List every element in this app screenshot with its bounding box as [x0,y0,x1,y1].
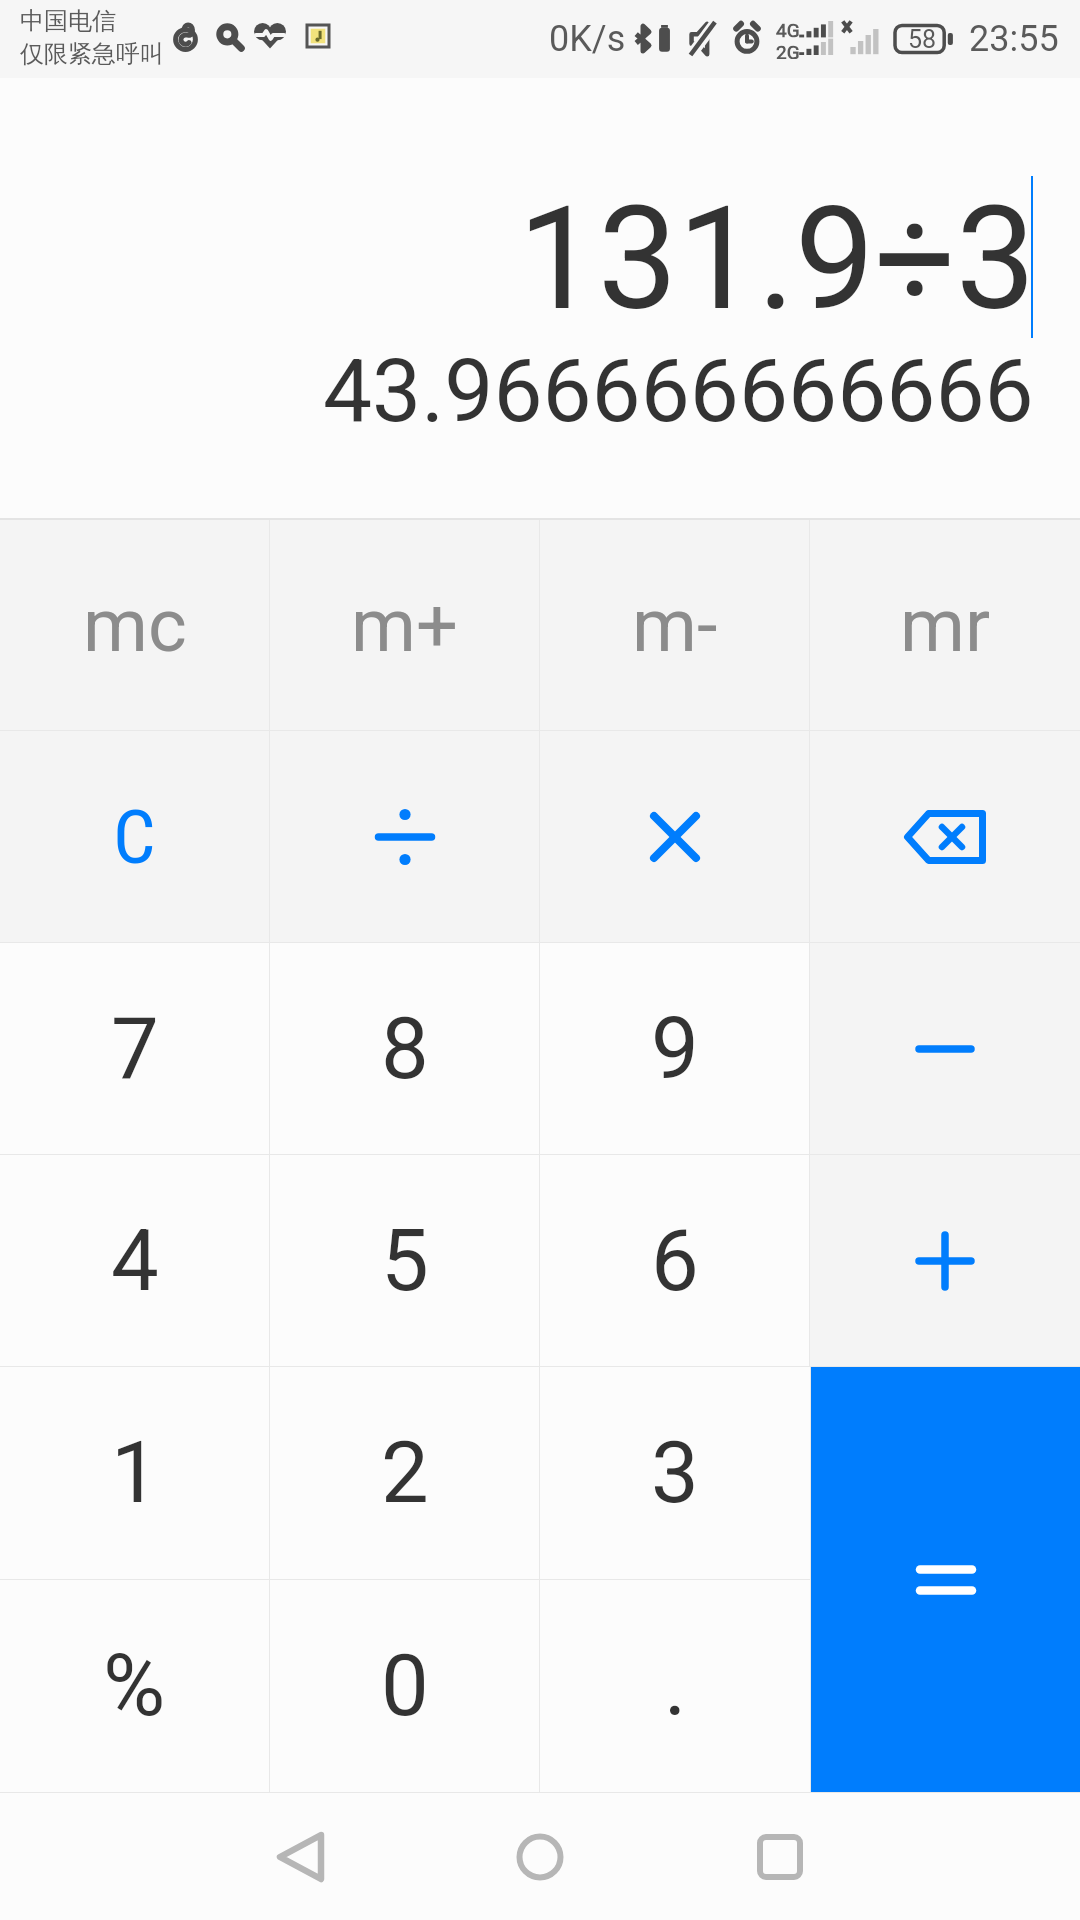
staticText: 9 [651,999,699,1099]
button[interactable]: Minus [810,943,1080,1154]
button[interactable]: m- [540,520,809,730]
staticText: 7 [111,999,159,1099]
button[interactable]: % [0,1580,269,1792]
staticText: 3 [651,1423,699,1523]
staticText: 8 [381,999,429,1099]
button[interactable]: Plus [810,1155,1080,1366]
staticText: mr [900,582,990,669]
staticText: C [113,793,156,881]
staticText: m- [632,582,718,669]
button[interactable]: m+ [270,520,539,730]
button[interactable]: 6 [540,1155,809,1366]
button[interactable]: mc [0,520,269,730]
button[interactable]: 5 [270,1155,539,1366]
button[interactable]: Backspace [810,731,1080,942]
button[interactable]: . [540,1580,810,1792]
staticText: 2G [776,41,800,59]
staticText: m+ [351,582,458,669]
button[interactable]: Divide [270,731,539,942]
button[interactable]: 7 [0,943,269,1154]
staticText: 23:55 [969,18,1059,60]
button[interactable]: 0 [270,1580,539,1792]
staticText: mc [83,582,187,669]
staticText: . [664,1636,687,1736]
staticText: 1 [111,1423,159,1523]
staticText: 0 [381,1636,429,1736]
staticText: 0K/s [549,18,626,60]
staticText: % [103,1636,166,1736]
staticText: 6 [651,1211,699,1311]
staticText: 中国电信 [20,6,116,36]
staticText: 仅限紧急呼叫 [20,39,164,69]
button[interactable]: mr [810,520,1080,730]
button[interactable]: Home [492,1809,588,1905]
button[interactable]: 9 [540,943,809,1154]
button[interactable]: 8 [270,943,539,1154]
staticText: 131.9÷3 [518,176,1036,342]
staticText: 58 [908,25,937,54]
staticText: 43.966666666666 [323,340,1034,442]
staticText: 5 [381,1211,429,1311]
button[interactable]: 1 [0,1367,269,1579]
button[interactable]: Recent apps [732,1809,828,1905]
staticText: 2 [381,1423,429,1523]
staticText: 4G [776,19,800,41]
button[interactable]: 2 [270,1367,539,1579]
staticText: 4 [111,1211,159,1311]
button[interactable]: 3 [540,1367,810,1579]
button[interactable]: Equals [811,1367,1080,1792]
button[interactable]: Back [255,1809,351,1905]
button[interactable]: Multiply [540,731,809,942]
button[interactable]: 4 [0,1155,269,1366]
button[interactable]: C [0,731,269,942]
